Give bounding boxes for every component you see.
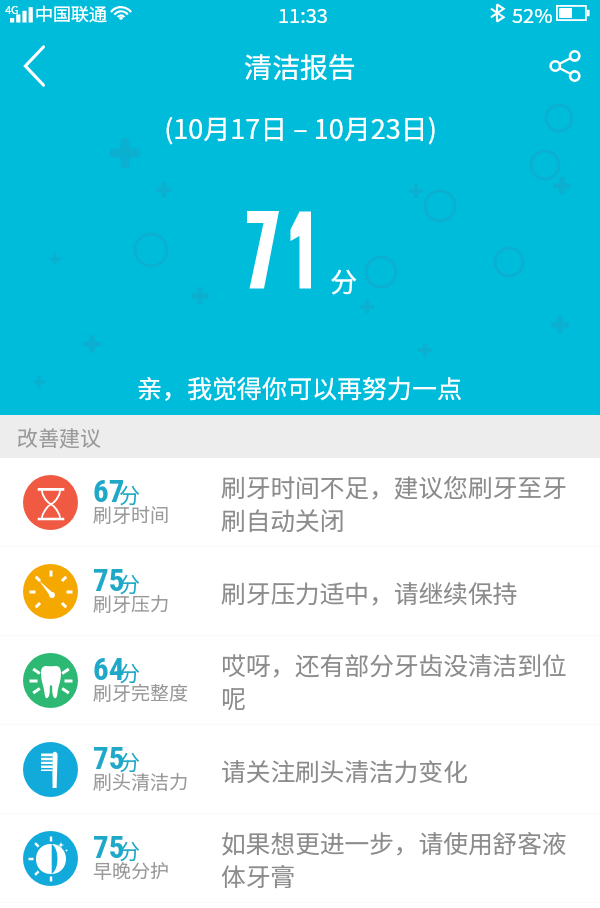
staticText: 75 — [93, 829, 125, 865]
staticText: 刷牙时间不足，建议您刷牙至牙刷自动关闭 — [221, 468, 575, 537]
button[interactable]: Back — [0, 36, 70, 96]
button[interactable]: 64 — [0, 636, 600, 725]
staticText: 52% — [512, 0, 553, 29]
staticText: 分 — [119, 657, 140, 687]
staticText: 分 — [119, 835, 140, 865]
staticText: 分 — [119, 746, 140, 776]
staticText: 刷牙压力适中，请继续保持 — [221, 574, 575, 610]
staticText: 早晚分护 — [93, 856, 170, 884]
button[interactable]: 75 — [0, 547, 600, 636]
button[interactable]: 75 — [0, 725, 600, 814]
button[interactable]: 67 — [0, 458, 600, 547]
staticText: 清洁报告 — [244, 46, 357, 87]
staticText: 75 — [93, 740, 125, 776]
staticText: 刷牙压力 — [93, 589, 170, 617]
staticText: 分 — [330, 261, 357, 300]
button[interactable]: Share — [530, 36, 600, 96]
staticText: 11:33 — [278, 0, 328, 29]
staticText: 哎呀，还有部分牙齿没清洁到位呢 — [221, 646, 575, 715]
staticText: 请关注刷头清洁力变化 — [221, 752, 575, 788]
staticText: 75 — [93, 562, 125, 598]
staticText: 分 — [119, 479, 140, 509]
staticText: (10月17日 – 10月23日) — [164, 108, 437, 147]
staticText: 亲，我觉得你可以再努力一点 — [137, 369, 463, 405]
staticText: 刷牙完整度 — [93, 678, 189, 706]
staticText: 刷牙时间 — [93, 500, 170, 528]
staticText: 改善建议 — [17, 422, 101, 452]
staticText: 如果想更进一步，请使用舒客液体牙膏 — [221, 824, 575, 893]
staticText: 4G — [5, 1, 19, 17]
staticText: 分 — [119, 568, 140, 598]
staticText: 刷头清洁力 — [93, 767, 189, 795]
staticText: 64 — [93, 651, 125, 687]
staticText: 67 — [93, 473, 125, 509]
button[interactable]: 75 — [0, 814, 600, 903]
staticText: 中国联通 — [35, 0, 107, 26]
